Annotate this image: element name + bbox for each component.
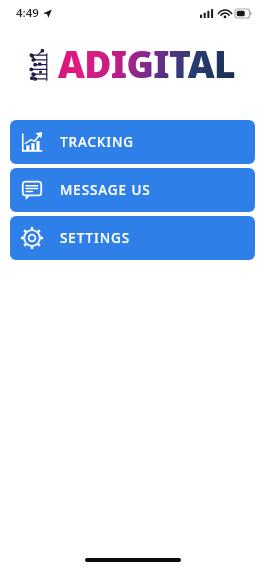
staticText: TRACKING <box>60 133 135 151</box>
staticText: SETTINGS <box>60 229 131 247</box>
other: Tracking <box>21 131 43 153</box>
button[interactable]: Tracking <box>10 120 255 164</box>
other: Message us <box>21 179 43 201</box>
button[interactable]: Message us <box>10 168 255 212</box>
staticText: ADIGITAL <box>58 38 235 88</box>
other: Settings <box>21 227 43 249</box>
button[interactable]: Settings <box>10 216 255 260</box>
staticText: MESSAGE US <box>60 181 151 199</box>
staticText: 4:49 <box>16 5 39 21</box>
